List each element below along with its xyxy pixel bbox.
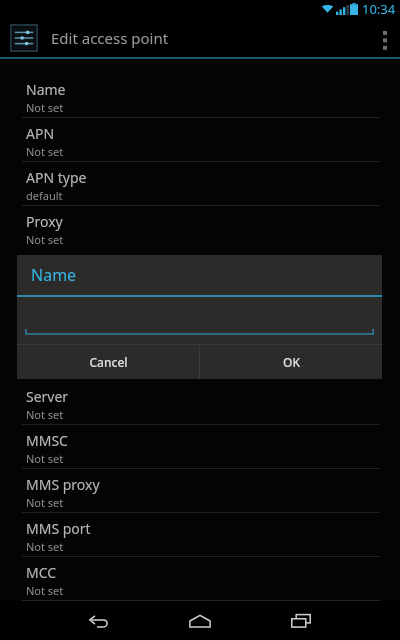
- staticText: 10:34: [362, 0, 396, 18]
- button[interactable]: Name: [0, 74, 400, 118]
- staticText: Not set: [26, 100, 64, 115]
- staticText: default: [26, 188, 63, 203]
- button[interactable]: Back: [77, 601, 121, 640]
- button[interactable]: [17, 297, 382, 344]
- button[interactable]: MMSC: [0, 425, 400, 469]
- staticText: Not set: [26, 232, 64, 247]
- staticText: Name: [26, 80, 66, 99]
- staticText: Not set: [26, 583, 64, 598]
- staticText: Name: [31, 264, 77, 286]
- staticText: Edit access point: [51, 28, 169, 48]
- button[interactable]: OK: [200, 345, 382, 379]
- staticText: MCC: [26, 563, 57, 582]
- staticText: APN type: [26, 168, 87, 187]
- button[interactable]: Recent apps: [279, 601, 323, 640]
- staticText: Cancel: [89, 354, 128, 370]
- button[interactable]: MMS port: [0, 513, 400, 557]
- button[interactable]: Cancel: [17, 345, 199, 379]
- button[interactable]: More options: [370, 18, 400, 57]
- button[interactable]: APN: [0, 118, 400, 162]
- button[interactable]: MMS proxy: [0, 469, 400, 513]
- staticText: Not set: [26, 451, 64, 466]
- staticText: Not set: [26, 144, 64, 159]
- button[interactable]: Server: [0, 381, 400, 425]
- staticText: Server: [26, 387, 69, 406]
- staticText: Proxy: [26, 212, 63, 231]
- button[interactable]: MCC: [0, 557, 400, 601]
- staticText: MMS proxy: [26, 475, 100, 494]
- staticText: APN: [26, 124, 55, 143]
- staticText: MMSC: [26, 431, 68, 450]
- button[interactable]: APN type: [0, 162, 400, 206]
- button[interactable]: Up: [9, 23, 39, 53]
- button[interactable]: Home: [178, 601, 222, 640]
- staticText: Not set: [26, 407, 64, 422]
- button[interactable]: Proxy: [0, 206, 400, 249]
- staticText: Not set: [26, 495, 64, 510]
- staticText: Not set: [26, 539, 64, 554]
- staticText: MMS port: [26, 519, 91, 538]
- staticText: OK: [283, 354, 300, 370]
